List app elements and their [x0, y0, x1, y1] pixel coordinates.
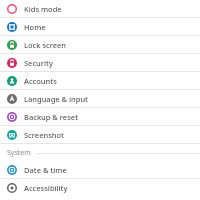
staticText: Kids mode	[24, 4, 62, 14]
button[interactable]: Screenshot	[0, 126, 200, 143]
button[interactable]: Security	[0, 54, 200, 71]
button[interactable]: Lock screen	[0, 36, 200, 53]
button[interactable]: Accounts	[0, 72, 200, 89]
staticText: Language & input	[24, 94, 88, 104]
button[interactable]: Language & input	[0, 90, 200, 107]
staticText: System	[7, 148, 31, 158]
button[interactable]: Accessibility	[0, 179, 200, 196]
staticText: Lock screen	[24, 40, 67, 50]
button[interactable]: Kids mode	[0, 0, 200, 17]
staticText: Screenshot	[24, 130, 64, 140]
staticText: Accessibility	[24, 183, 68, 193]
staticText: Backup & reset	[24, 112, 78, 122]
button[interactable]: Home	[0, 18, 200, 35]
staticText: Date & time	[24, 165, 67, 175]
staticText: Security	[24, 58, 53, 68]
staticText: Accounts	[24, 76, 57, 86]
staticText: Home	[24, 22, 46, 32]
button[interactable]: Date & time	[0, 161, 200, 178]
button[interactable]: Backup & reset	[0, 108, 200, 125]
